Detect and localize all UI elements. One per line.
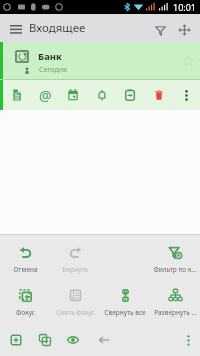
staticText: Вернуть: [62, 265, 88, 274]
button[interactable]: Reminder: [91, 80, 113, 110]
button[interactable]: Star: [181, 53, 195, 67]
button[interactable]: Back: [92, 326, 116, 354]
button[interactable]: Preview: [61, 326, 85, 354]
button[interactable]: Фокус: [0, 277, 50, 317]
staticText: @: [39, 86, 52, 105]
staticText: Снять фокус: [56, 308, 95, 317]
staticText: Фокус: [16, 308, 35, 317]
staticText: Сегодня: [39, 65, 68, 75]
staticText: Развернуть ...: [154, 308, 197, 317]
button[interactable]: Duplicate: [33, 326, 57, 354]
button[interactable]: Фильтр по к...: [150, 234, 200, 274]
button[interactable]: Банк: [0, 42, 200, 80]
button[interactable]: Вернуть: [50, 234, 100, 274]
staticText: Фильтр по к...: [153, 265, 197, 274]
button[interactable]: Отмена: [0, 234, 50, 274]
button[interactable]: Email: [34, 80, 56, 110]
button[interactable]: Menu: [0, 14, 32, 42]
button[interactable]: Calendar: [62, 80, 84, 110]
button[interactable]: Add: [4, 326, 28, 354]
button[interactable]: More: [175, 80, 197, 110]
button[interactable]: Filter: [148, 14, 174, 42]
button[interactable]: Task: [119, 80, 141, 110]
staticText: 10:01: [173, 1, 197, 13]
staticText: Входящее: [29, 20, 86, 36]
button[interactable]: Свернуть все: [100, 277, 150, 317]
staticText: Свернуть все: [104, 308, 146, 317]
staticText: Отмена: [13, 265, 38, 274]
button[interactable]: Delete: [148, 80, 170, 110]
button[interactable]: More options: [177, 326, 199, 354]
button[interactable]: Развернуть ...: [150, 277, 200, 317]
button[interactable]: Снять фокус: [50, 277, 100, 317]
button[interactable]: Document: [6, 80, 28, 110]
button[interactable]: Move: [174, 14, 195, 42]
staticText: Банк: [38, 50, 62, 63]
